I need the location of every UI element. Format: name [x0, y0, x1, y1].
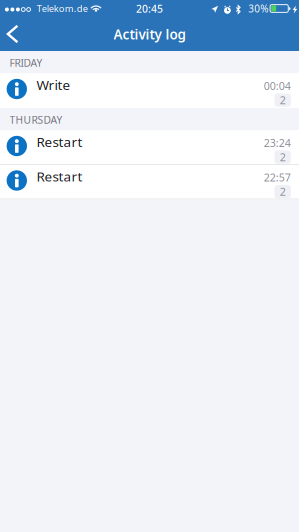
staticText: Restart — [36, 167, 82, 185]
staticText: 23:24 — [264, 136, 291, 150]
button[interactable]: Restart — [0, 130, 299, 165]
staticText: Write — [36, 75, 70, 94]
staticText: 2 — [280, 184, 286, 199]
staticText: 20:45 — [136, 2, 163, 16]
staticText: Telekom.de — [37, 2, 88, 15]
button[interactable]: Write — [0, 73, 299, 108]
staticText: THURSDAY — [10, 113, 63, 127]
staticText: 2 — [280, 93, 286, 107]
button[interactable]: Back — [0, 20, 35, 50]
staticText: 22:57 — [264, 170, 291, 185]
staticText: 30% — [248, 2, 268, 15]
staticText: 00:04 — [264, 79, 291, 93]
staticText: Restart — [36, 132, 82, 151]
staticText: Activity log — [113, 25, 185, 43]
button[interactable]: Restart — [0, 165, 299, 199]
staticText: 2 — [280, 150, 286, 164]
staticText: FRIDAY — [10, 56, 43, 70]
